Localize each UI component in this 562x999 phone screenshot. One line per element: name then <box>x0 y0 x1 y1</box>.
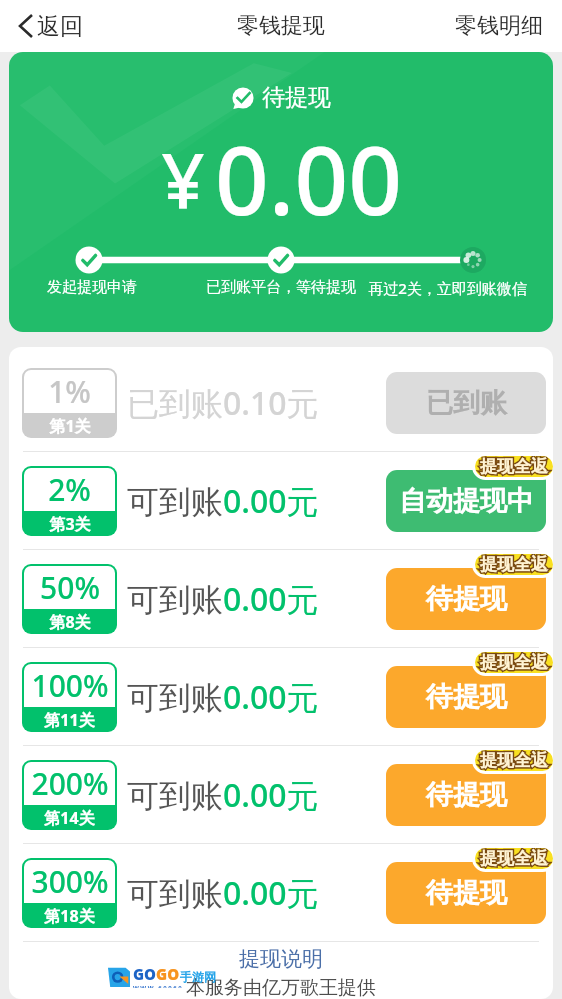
staticText: 待提现 <box>426 582 507 616</box>
staticText: 零钱提现 <box>237 12 325 40</box>
staticText: 第1关 <box>49 415 91 437</box>
staticText: 待提现 <box>426 876 507 910</box>
staticText: 提现全返 <box>480 652 548 673</box>
staticText: 0.00 <box>215 115 402 243</box>
staticText: 提现全返 <box>480 848 548 869</box>
staticText: 100% <box>31 665 109 706</box>
staticText: 200% <box>31 763 109 804</box>
staticText: 可到账0.00元 <box>127 871 319 915</box>
staticText: 1% <box>48 371 91 412</box>
staticText: 已到账 <box>426 386 507 420</box>
staticText: 已到账平台，等待提现 <box>206 278 356 297</box>
staticText: GOGO <box>133 964 180 984</box>
staticText: 发起提现申请 <box>47 278 137 297</box>
staticText: 第8关 <box>49 611 91 633</box>
button[interactable]: 待提现 <box>386 862 546 924</box>
staticText: 提现全返 <box>480 456 548 477</box>
button[interactable]: 已到账 <box>386 372 546 434</box>
button[interactable]: 待提现 <box>386 666 546 728</box>
staticText: 待提现 <box>426 680 507 714</box>
staticText: 第14关 <box>44 807 95 829</box>
staticText: 提现全返 <box>480 750 548 771</box>
staticText: 待提现 <box>426 778 507 812</box>
staticText: 可到账0.00元 <box>127 773 319 817</box>
staticText: 本服务由亿万歌王提供 <box>9 976 553 999</box>
staticText: 50% <box>40 567 100 608</box>
staticText: 返回 <box>37 12 83 41</box>
staticText: 待提现 <box>262 83 331 112</box>
staticText: 手游网 <box>180 969 216 984</box>
button[interactable]: 待提现 <box>386 568 546 630</box>
button[interactable]: 待提现 <box>386 764 546 826</box>
staticText: 可到账0.00元 <box>127 577 319 621</box>
button[interactable]: 提现说明 <box>9 946 553 972</box>
staticText: 可到账0.00元 <box>127 479 319 523</box>
staticText: W W W . 6 0 9 6 0 . <box>133 984 185 988</box>
staticText: ¥ <box>161 127 205 231</box>
staticText: 第11关 <box>44 709 95 731</box>
staticText: 提现全返 <box>480 554 548 575</box>
staticText: 提现全返 <box>480 456 548 477</box>
button[interactable]: 零钱明细 <box>441 12 562 40</box>
staticText: 提现全返 <box>480 848 548 869</box>
staticText: 提现全返 <box>480 652 548 673</box>
staticText: 再过2关，立即到账微信 <box>368 278 527 298</box>
staticText: 第18关 <box>44 905 95 927</box>
staticText: 2% <box>48 469 91 510</box>
staticText: 提现全返 <box>480 750 548 771</box>
staticText: 可到账0.00元 <box>127 675 319 719</box>
staticText: 300% <box>31 861 109 902</box>
staticText: 提现全返 <box>480 554 548 575</box>
staticText: 自动提现中 <box>399 484 534 518</box>
staticText: 已到账0.10元 <box>127 381 319 425</box>
button[interactable]: 返回 <box>0 0 93 52</box>
button[interactable]: 自动提现中 <box>386 470 546 532</box>
staticText: 第3关 <box>49 513 91 535</box>
